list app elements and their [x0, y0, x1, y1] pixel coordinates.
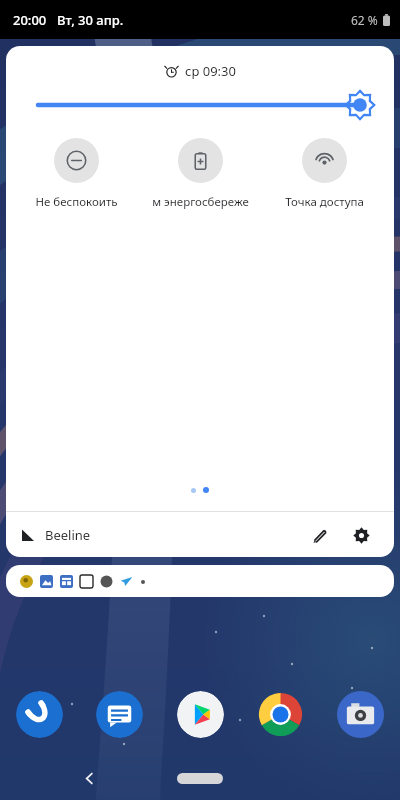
button[interactable]: Phone	[16, 691, 63, 738]
button[interactable]: Brightness	[6, 92, 394, 118]
staticText: м энергосбереже	[152, 194, 249, 210]
staticText: Вт, 30 апр.	[57, 11, 124, 29]
button[interactable]: Messages	[96, 691, 143, 738]
button[interactable]: Chrome	[257, 691, 304, 738]
staticText: Не беспокоить	[35, 194, 118, 210]
staticText: Beeline	[45, 526, 91, 544]
button[interactable]: Beeline	[22, 526, 91, 544]
button[interactable]: Точка доступа	[262, 138, 386, 210]
button[interactable]: м энергосбереже	[138, 138, 262, 210]
button[interactable]: Edit tiles	[302, 518, 336, 552]
button[interactable]: Back	[74, 763, 104, 793]
button[interactable]: Notifications	[6, 565, 394, 597]
button[interactable]: Не беспокоить	[14, 138, 138, 210]
button[interactable]: Camera	[337, 691, 384, 738]
button[interactable]: ср 09:30	[6, 62, 394, 80]
staticText: 62 %	[351, 12, 378, 28]
staticText: 20:00	[13, 11, 47, 29]
button[interactable]: Home	[177, 773, 223, 784]
button[interactable]: Play Store	[177, 691, 224, 738]
staticText: ср 09:30	[185, 62, 236, 80]
staticText: Точка доступа	[285, 194, 364, 210]
button[interactable]: Settings	[344, 518, 378, 552]
